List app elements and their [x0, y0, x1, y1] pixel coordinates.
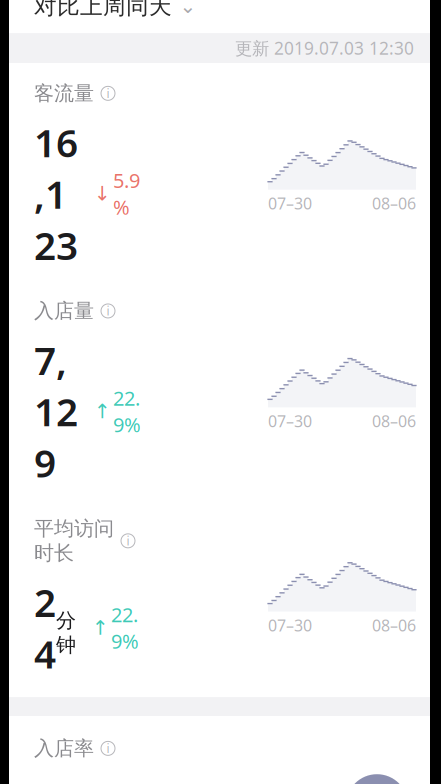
- staticText: 07–30: [268, 615, 312, 636]
- staticText: 16,123: [34, 117, 78, 271]
- staticText: 5.9%: [113, 167, 140, 220]
- staticText: i: [106, 740, 109, 756]
- staticText: 更新 2019.07.03 12:30: [235, 36, 414, 59]
- staticText: 24: [34, 576, 56, 679]
- staticText: 7,129: [34, 334, 78, 488]
- staticText: 22.9%: [111, 601, 139, 654]
- staticText: 客流量: [34, 81, 94, 106]
- staticText: ↑: [94, 400, 111, 423]
- staticText: 08–06: [372, 615, 416, 636]
- staticText: i: [106, 303, 109, 319]
- staticText: ↓: [94, 182, 111, 205]
- staticText: ↑: [92, 616, 109, 639]
- staticText: i: [126, 533, 129, 549]
- staticText: 08–06: [372, 193, 416, 214]
- staticText: i: [106, 85, 109, 101]
- staticText: 07–30: [268, 410, 312, 431]
- staticText: 入店量: [34, 299, 94, 323]
- staticText: ⌄: [179, 0, 196, 17]
- staticText: 平均访问时长: [34, 516, 114, 565]
- staticText: 22.9%: [113, 385, 141, 438]
- staticText: 07–30: [268, 193, 312, 214]
- staticText: 入店率: [34, 736, 94, 761]
- staticText: 分钟: [56, 608, 76, 657]
- staticText: 08–06: [372, 410, 416, 431]
- staticText: 对比上周同天: [34, 0, 172, 20]
- button[interactable]: 对比上周同天: [9, 0, 430, 33]
